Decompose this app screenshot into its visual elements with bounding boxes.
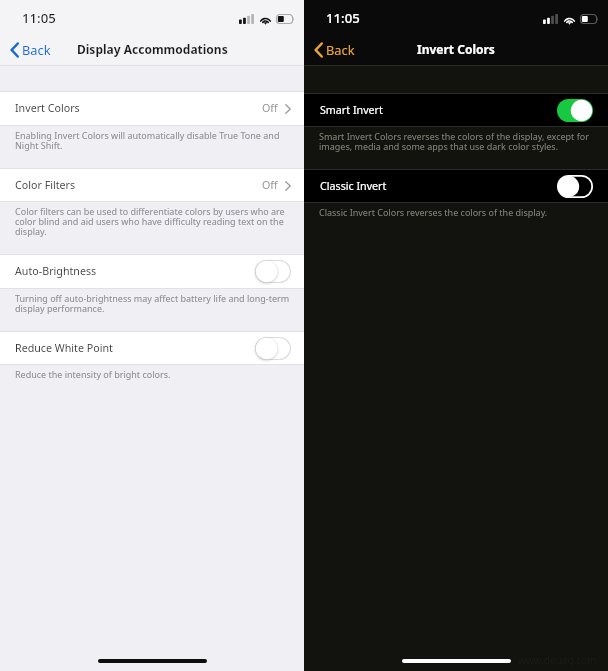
button[interactable]: Color Filters	[0, 169, 304, 201]
staticText: Color filters can be used to differentia…	[15, 205, 292, 238]
button[interactable]: Toggle off	[255, 337, 291, 360]
button[interactable]: Smart Invert	[304, 94, 608, 126]
staticText: Invert Colors	[417, 41, 495, 57]
button[interactable]: Toggle off	[255, 260, 291, 283]
staticText: Off	[262, 178, 278, 193]
button[interactable]: Auto-Brightness	[0, 255, 304, 288]
staticText: Back	[22, 41, 51, 58]
button[interactable]: Invert Colors	[0, 92, 304, 125]
staticText: 11:05	[326, 9, 360, 27]
staticText: Enabling Invert Colors will automaticall…	[15, 129, 292, 152]
staticText: Display Accommodations	[77, 41, 228, 57]
staticText: Auto-Brightness	[15, 264, 97, 279]
staticText: Reduce the intensity of bright colors.	[15, 368, 171, 380]
button[interactable]: Classic Invert	[304, 170, 608, 202]
button[interactable]: Back	[0, 37, 61, 62]
button[interactable]: Toggle off	[557, 175, 593, 198]
staticText: Turning off auto-brightness may affect b…	[15, 292, 292, 315]
button[interactable]: Back	[304, 37, 365, 62]
button[interactable]: Toggle on	[557, 99, 593, 122]
staticText: Smart Invert Colors reverses the colors …	[319, 130, 596, 153]
button[interactable]: Reduce White Point	[0, 332, 304, 364]
staticText: Reduce White Point	[15, 341, 113, 356]
staticText: Classic Invert Colors reverses the color…	[319, 206, 548, 218]
staticText: Back	[326, 41, 355, 58]
staticText: 11:05	[22, 9, 56, 27]
staticText: Color Filters	[15, 178, 76, 193]
staticText: Invert Colors	[15, 101, 80, 116]
staticText: Off	[262, 101, 278, 116]
staticText: Smart Invert	[320, 103, 383, 118]
staticText: Classic Invert	[320, 179, 387, 194]
